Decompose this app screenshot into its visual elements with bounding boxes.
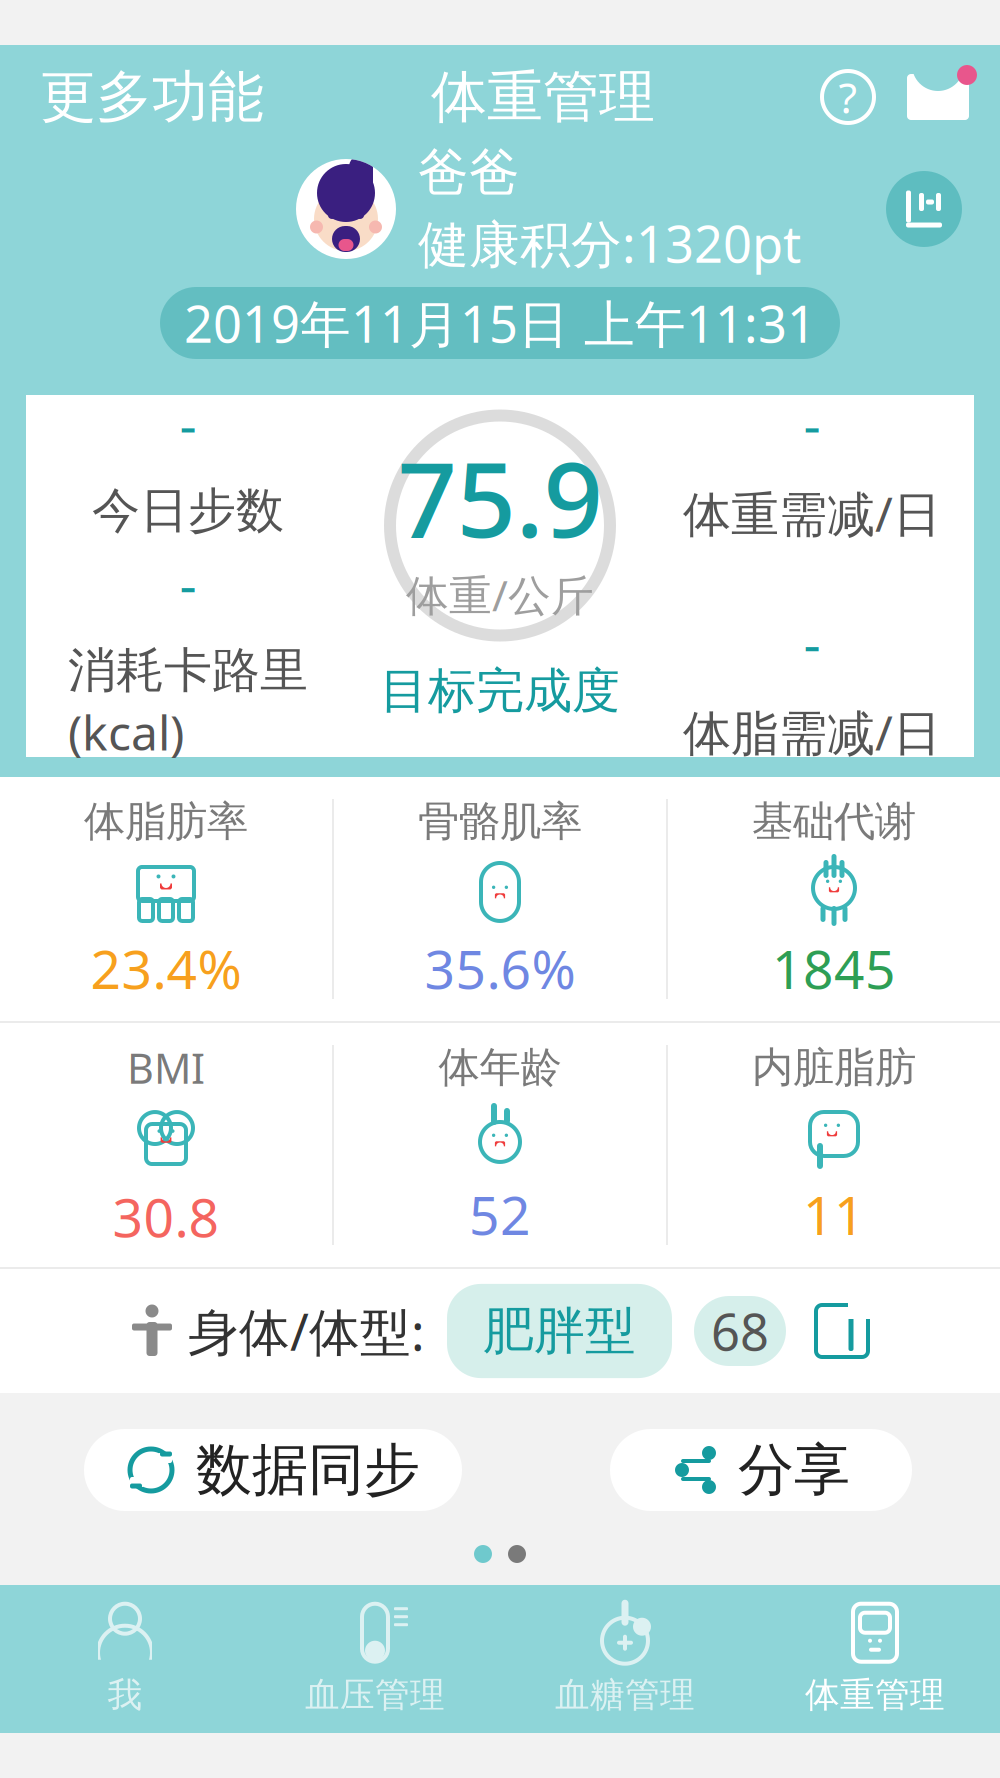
staticText: 68 [711, 1297, 769, 1365]
staticText: - [179, 548, 196, 619]
staticText: 体重需减/日 [683, 481, 941, 545]
button[interactable]: 爸爸 [296, 141, 801, 277]
staticText: 血压管理 [305, 1674, 445, 1716]
staticText: 体年龄 [438, 1042, 561, 1093]
staticText: 体重/公斤 [406, 566, 594, 623]
button[interactable]: 骨骼肌率 [334, 777, 666, 1021]
staticText: 血糖管理 [555, 1674, 695, 1716]
button[interactable]: 内脏脂肪 [668, 1023, 1000, 1267]
button[interactable]: 消息 [898, 68, 978, 126]
staticText: 体重管理 [431, 63, 655, 131]
button[interactable]: 更多功能 [0, 55, 264, 139]
staticText: 身体/体型: [188, 1297, 425, 1365]
button[interactable]: 身体/体型: [0, 1269, 1000, 1393]
staticText: 今日步数 [92, 481, 284, 540]
staticText: 健康积分:1320pt [418, 209, 801, 277]
staticText: 体脂肪率 [84, 796, 248, 847]
staticText: 更多功能 [40, 63, 264, 131]
staticText: BMI [127, 1040, 205, 1095]
staticText: 23.4% [90, 933, 241, 1004]
staticText: - [803, 388, 820, 459]
button[interactable]: BMI [0, 1023, 332, 1267]
staticText: 消耗卡路里(kcal) [68, 641, 308, 764]
button[interactable]: 体重管理 [750, 1586, 1000, 1732]
staticText: 基础代谢 [752, 796, 916, 847]
staticText: 爸爸 [418, 141, 520, 203]
button[interactable]: 我 [0, 1586, 250, 1732]
staticText: 35.6% [424, 933, 575, 1004]
staticText: 数据同步 [196, 1436, 420, 1504]
staticText: 骨骼肌率 [418, 796, 582, 847]
staticText: 我 [107, 1674, 142, 1716]
button[interactable]: 2019年11月15日 上午11:31 [160, 287, 840, 359]
button[interactable]: 体年龄 [334, 1023, 666, 1267]
staticText: 1845 [772, 933, 896, 1004]
staticText: 2019年11月15日 上午11:31 [184, 289, 816, 357]
staticText: 内脏脂肪 [752, 1042, 916, 1093]
staticText: 75.9 [397, 428, 602, 566]
staticText: 30.8 [112, 1181, 219, 1252]
button[interactable]: 体脂肪率 [0, 777, 332, 1021]
button[interactable]: 血糖管理 [500, 1586, 750, 1732]
staticText: 分享 [738, 1436, 850, 1504]
staticText: 体重管理 [805, 1674, 945, 1716]
button[interactable]: 血压管理 [250, 1586, 500, 1732]
staticText: - [179, 388, 196, 459]
button[interactable]: 分享 [610, 1429, 912, 1511]
staticText: 体脂需减/日 [683, 700, 941, 764]
staticText: 目标完成度 [380, 661, 620, 720]
staticText: 肥胖型 [483, 1300, 636, 1362]
button[interactable]: 数据同步 [84, 1429, 462, 1511]
button[interactable]: 基础代谢 [668, 777, 1000, 1021]
staticText: ? [838, 69, 857, 125]
staticText: 11 [803, 1179, 865, 1250]
button[interactable]: 帮助 [822, 71, 874, 123]
staticText: 52 [469, 1179, 531, 1250]
button[interactable]: 趋势图表 [886, 171, 962, 247]
staticText: - [803, 607, 820, 678]
